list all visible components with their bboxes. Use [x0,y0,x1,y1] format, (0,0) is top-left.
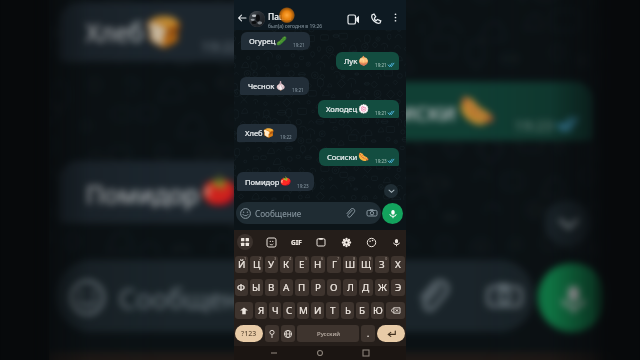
button[interactable]: П [295,279,309,296]
button[interactable]: Т [326,302,339,319]
button[interactable]: Home [314,347,326,359]
staticText: Лук [344,56,358,66]
staticText: 🧅 [358,56,370,67]
staticText: Сосиски [327,152,358,162]
button[interactable]: Ю [371,302,384,319]
staticText: Русский [317,330,340,338]
button[interactable]: Д [359,279,373,296]
button[interactable] [281,325,295,342]
staticText: 3 [274,256,277,261]
button[interactable]: Сосиски [319,148,399,166]
button[interactable]: Х [391,256,405,273]
staticText: Помидор [245,177,280,187]
button[interactable]: Ы [250,279,263,296]
staticText: 8 [353,256,356,261]
staticText: 7 [337,256,340,261]
button[interactable]: Profile photo [249,11,265,27]
button[interactable]: Помидор [59,161,313,223]
button[interactable]: Voice message [382,203,403,224]
button[interactable]: И [311,302,324,319]
button[interactable]: Л [343,279,357,296]
button[interactable]: Ж [375,279,389,296]
button[interactable]: Холодец [318,100,399,118]
staticText: Т [330,304,336,317]
staticText: 1 [244,256,247,261]
staticText: Б [359,304,366,317]
staticText: Сообщение [255,208,302,219]
button[interactable]: Паша [268,11,323,30]
button[interactable]: Сообщение [56,260,534,332]
button[interactable]: Р [311,279,325,296]
button[interactable]: Settings [339,235,353,249]
button[interactable]: . [361,325,375,342]
staticText: 🥒 [276,36,288,47]
button[interactable]: Voice call [368,11,383,26]
button[interactable]: 5 [295,256,309,273]
button[interactable]: Scroll to bottom [544,200,590,246]
button[interactable]: А [280,279,293,296]
staticText: Хлеб [85,15,145,48]
button[interactable]: М [297,302,309,319]
staticText: 19:21 [292,87,304,93]
staticText: 🌭 [458,95,498,131]
staticText: К [283,258,290,271]
button[interactable]: Ч [269,302,281,319]
button[interactable]: Хлеб [59,2,257,62]
button[interactable]: Back [235,11,248,24]
button[interactable]: Огурец [241,32,310,50]
button[interactable]: Русский [297,325,359,342]
button[interactable]: 8 [343,256,357,273]
button[interactable]: Voice message [538,263,607,332]
button[interactable]: Хлеб [237,124,297,142]
button[interactable]: GIF [289,235,303,249]
staticText: У [268,258,275,271]
button[interactable] [265,325,279,342]
button[interactable]: 6 [311,256,325,273]
button[interactable]: О [327,279,341,296]
staticText: 19:22 [201,35,241,55]
button[interactable]: More options [389,11,402,24]
staticText: О [330,281,338,294]
button[interactable]: 2 [250,256,263,273]
staticText: Ж [378,281,387,294]
staticText: 🍥 [358,104,370,115]
staticText: 9 [369,256,372,261]
button[interactable]: Clipboard [314,235,328,249]
button[interactable]: 4 [280,256,293,273]
button[interactable]: 1 [235,256,248,273]
staticText: Ы [252,281,261,294]
button[interactable]: Помидор [237,172,314,191]
button[interactable]: Ь [341,302,354,319]
button[interactable]: Лук [336,52,399,70]
staticText: 19:21 [293,42,305,48]
button[interactable]: 0 [375,256,389,273]
button[interactable]: С [283,302,295,319]
button[interactable]: Сообщение [236,202,381,224]
button[interactable]: Чеснок [240,77,309,95]
button[interactable]: Video call [345,11,361,27]
button[interactable]: Enter [377,325,405,342]
button[interactable]: 9 [359,256,373,273]
button[interactable]: 7 [327,256,341,273]
button[interactable]: Б [356,302,369,319]
button[interactable]: Scroll to bottom [384,184,398,198]
button[interactable]: Stickers [264,235,278,249]
button[interactable]: Ф [235,279,248,296]
button[interactable]: Я [255,302,267,319]
staticText: 🍅 [280,176,292,187]
button[interactable] [235,302,253,319]
staticText: был(а) сегодня в 19:26 [268,23,323,30]
button[interactable] [386,302,405,319]
button[interactable]: ?123 [235,325,263,342]
button[interactable]: Theme [364,235,378,249]
button[interactable]: В [265,279,278,296]
button[interactable]: Apps [237,234,253,250]
button[interactable]: Recents [360,347,372,359]
staticText: И [314,304,322,317]
button[interactable]: Э [391,279,405,296]
button[interactable]: Voice input [389,235,403,249]
button[interactable]: Сосиски [330,81,594,141]
button[interactable]: Back [268,347,280,359]
button[interactable]: 3 [265,256,278,273]
staticText: 19:21 [375,62,387,68]
